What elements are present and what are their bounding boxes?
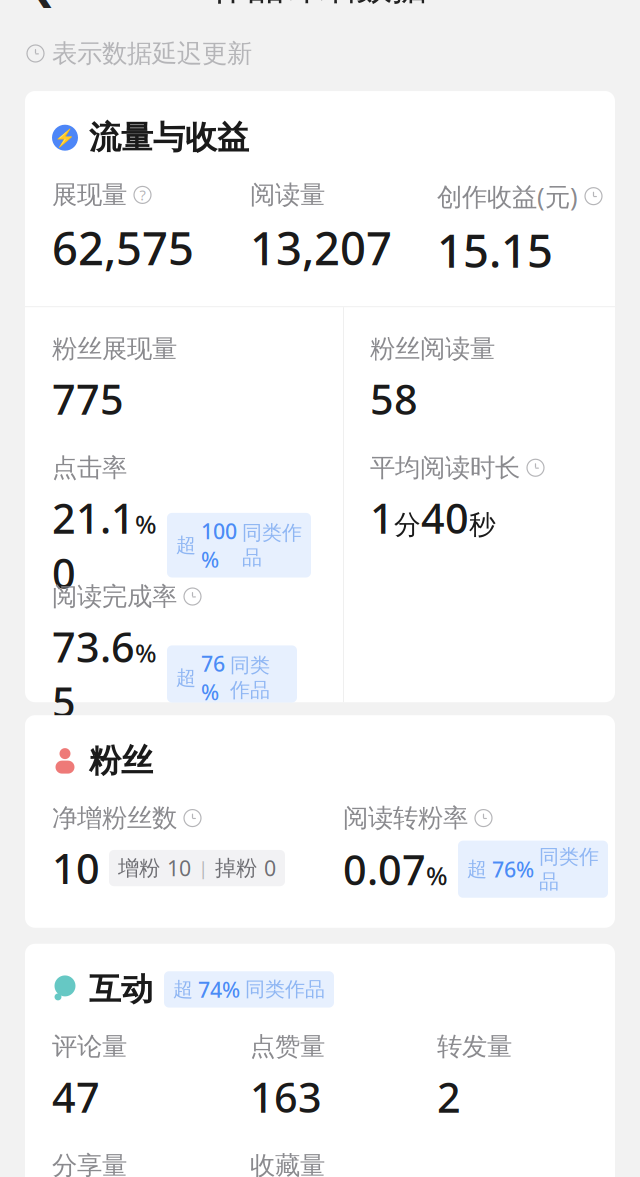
staticText: 平均阅读时长	[370, 452, 520, 483]
staticText: 分	[394, 508, 421, 541]
staticText: 21.10	[52, 490, 135, 600]
staticText: 超	[176, 533, 196, 557]
staticText: ⚡	[54, 128, 76, 148]
staticText: 100%	[201, 517, 237, 574]
staticText: 同类作品	[245, 977, 325, 1002]
staticText: 47	[52, 1069, 100, 1124]
staticText: 10	[167, 854, 191, 882]
staticText: 58	[370, 371, 418, 426]
staticText: 掉粉	[215, 855, 257, 881]
staticText: 0	[264, 854, 276, 882]
staticText: 粉丝展现量	[52, 333, 177, 364]
staticText: 10	[52, 841, 100, 895]
staticText: ?	[139, 185, 145, 205]
staticText: 62,575	[52, 217, 194, 278]
staticText: ❮	[27, 0, 57, 7]
staticText: 775	[52, 371, 124, 426]
staticText: 同类作品	[539, 845, 599, 894]
staticText: 转发量	[437, 1031, 512, 1062]
staticText: 76%	[492, 855, 534, 883]
staticText: 净增粉丝数	[52, 802, 177, 834]
staticText: 收藏量	[250, 1150, 325, 1177]
staticText: 0.07	[343, 842, 426, 897]
staticText: 点击率	[52, 452, 127, 483]
staticText: 阅读转粉率	[343, 802, 468, 834]
staticText: 互动	[89, 970, 153, 1009]
staticText: 点赞量	[250, 1031, 325, 1062]
staticText: 增粉	[118, 855, 160, 881]
staticText: %	[135, 507, 157, 541]
staticText: 流量与收益	[89, 118, 249, 157]
staticText: 粉丝	[89, 741, 153, 780]
staticText: 超	[176, 665, 196, 690]
staticText: 阅读量	[250, 179, 325, 210]
staticText: 评论量	[52, 1031, 127, 1062]
staticText: 秒	[469, 508, 496, 541]
staticText: 超	[467, 857, 487, 881]
staticText: %	[426, 859, 448, 892]
staticText: 表示数据延迟更新	[52, 38, 252, 69]
staticText: 76%	[201, 649, 225, 706]
staticText: 2	[437, 1069, 461, 1124]
staticText: |	[198, 856, 208, 880]
staticText: 同类作品	[230, 653, 270, 702]
staticText: %	[135, 636, 157, 669]
staticText: 40	[421, 490, 469, 545]
staticText: 阅读完成率	[52, 581, 177, 612]
staticText: 展现量	[52, 179, 127, 210]
staticText: 粉丝阅读量	[370, 333, 495, 364]
staticText: 作品详细数据	[212, 0, 428, 9]
staticText: 15.15	[437, 220, 553, 280]
button[interactable]: Back	[12, 0, 72, 17]
staticText: 超	[173, 977, 193, 1002]
staticText: 同类作品	[242, 521, 302, 570]
staticText: 163	[250, 1069, 322, 1124]
staticText: 分享量	[52, 1150, 127, 1177]
staticText: 74%	[198, 975, 240, 1004]
staticText: 创作收益(元)	[437, 179, 578, 213]
staticText: 13,207	[250, 217, 392, 278]
staticText: 1	[370, 490, 394, 545]
staticText: 73.65	[52, 619, 135, 729]
